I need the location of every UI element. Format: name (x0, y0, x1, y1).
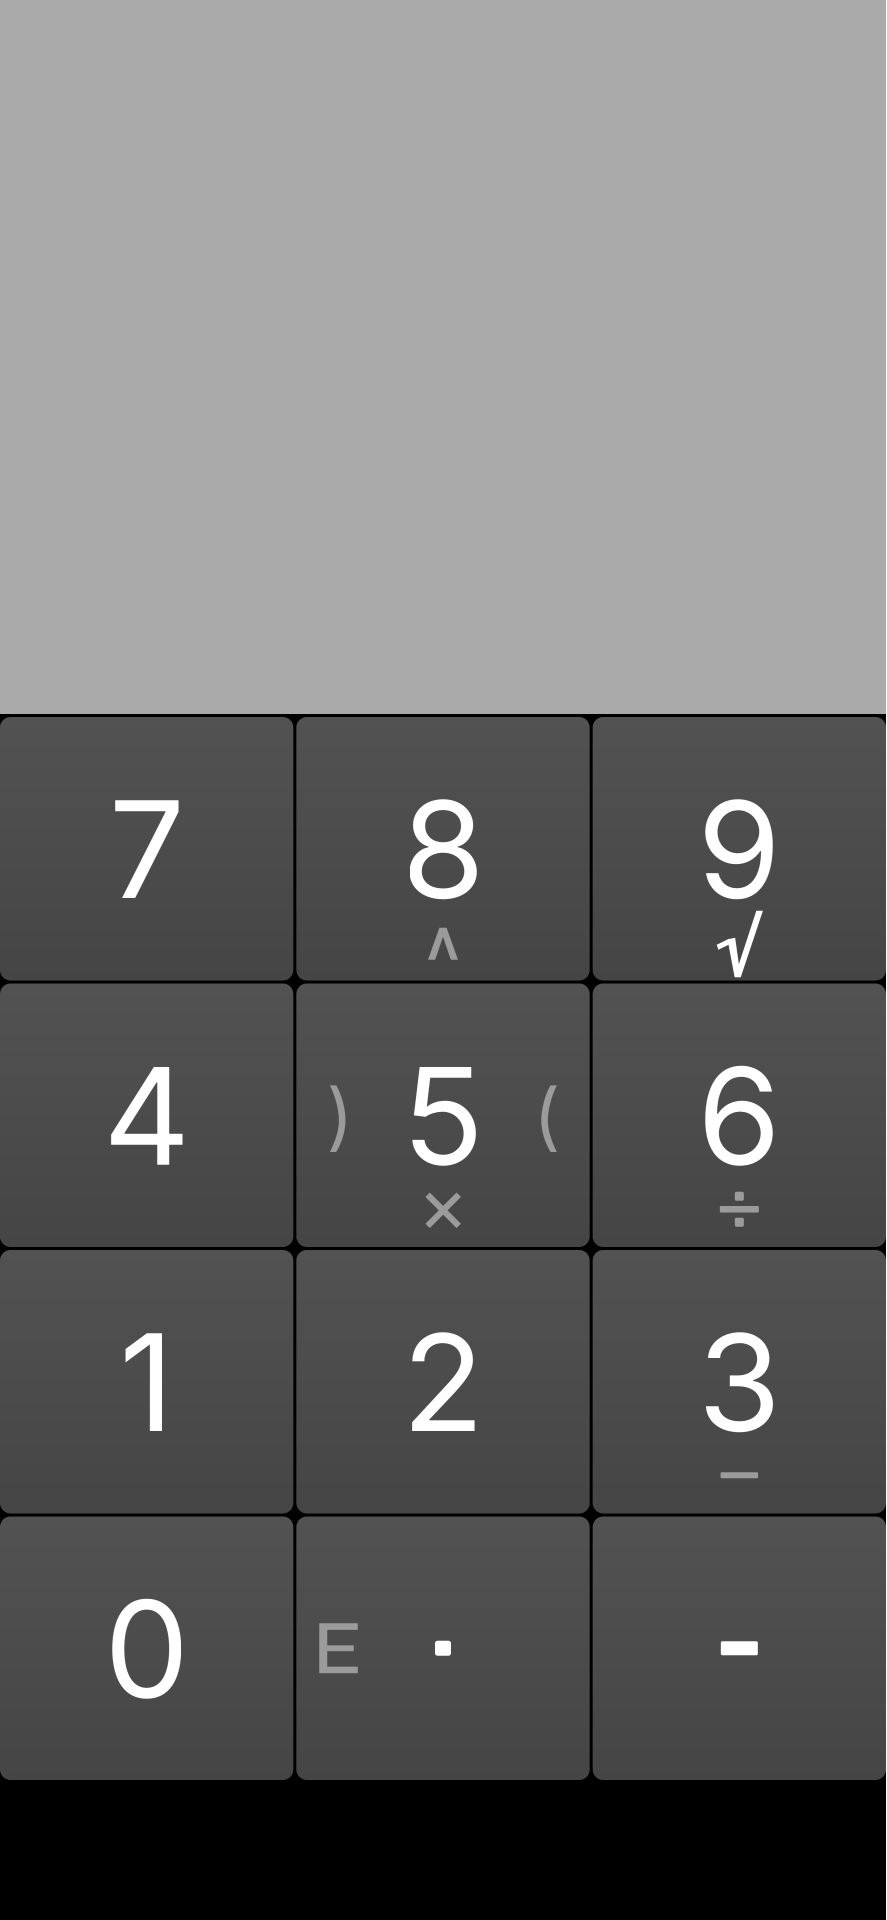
staticText: 4 (103, 1034, 190, 1197)
button[interactable]: 9, square root (593, 717, 886, 980)
staticText: ( (533, 1071, 560, 1160)
button[interactable]: 1 (0, 1250, 293, 1513)
staticText: 2 (402, 1301, 484, 1464)
button[interactable]: 8, power (296, 717, 590, 980)
staticText: 6 (697, 1034, 781, 1197)
button[interactable]: 7 (0, 717, 293, 980)
staticText: 1 (119, 1301, 174, 1464)
staticText: 9 (697, 768, 781, 931)
button[interactable]: 2 (296, 1250, 590, 1513)
staticText: × (417, 1157, 468, 1251)
staticText: ) (326, 1071, 353, 1160)
button[interactable]: 0 (0, 1516, 293, 1780)
staticText: 0 (104, 1567, 189, 1730)
button[interactable]: 4 (0, 983, 293, 1247)
staticText: 8 (401, 768, 484, 931)
button[interactable]: 6, divide (593, 983, 886, 1247)
button[interactable]: 5, multiply (296, 983, 590, 1247)
button[interactable]: decimal point (296, 1516, 590, 1780)
staticText: 3 (698, 1301, 781, 1464)
button[interactable]: 3, subtract (593, 1250, 886, 1513)
staticText: 7 (109, 768, 185, 931)
button[interactable]: minus (593, 1516, 886, 1780)
staticText: 5 (402, 1034, 484, 1197)
